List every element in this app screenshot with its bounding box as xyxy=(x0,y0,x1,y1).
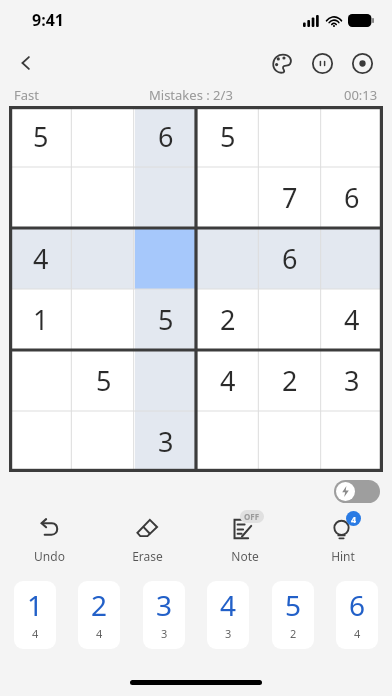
staticText: 5 xyxy=(285,586,302,624)
staticText: 3 xyxy=(161,626,168,641)
button[interactable] xyxy=(9,167,72,228)
button[interactable]: 6 xyxy=(336,581,378,649)
staticText: Note xyxy=(231,548,259,564)
staticText: Fast xyxy=(14,86,39,104)
button[interactable]: 5 xyxy=(197,106,259,167)
button[interactable]: 4 xyxy=(9,228,72,289)
staticText: 4 xyxy=(344,301,360,338)
staticText: 2 xyxy=(282,362,298,399)
staticText: Erase xyxy=(132,548,163,564)
button[interactable]: 2 xyxy=(78,581,120,649)
button[interactable]: 4 xyxy=(294,509,392,567)
staticText: 6 xyxy=(344,179,360,216)
button[interactable]: Auto candidate toggle xyxy=(334,480,380,503)
staticText: 4 xyxy=(354,626,361,641)
button[interactable]: 2 xyxy=(197,289,259,350)
staticText: 5 xyxy=(96,362,112,399)
button[interactable]: Undo xyxy=(0,509,98,567)
button[interactable]: 5 xyxy=(72,350,135,411)
button[interactable] xyxy=(321,106,383,167)
button[interactable] xyxy=(321,411,383,472)
button[interactable] xyxy=(321,228,383,289)
staticText: 4 xyxy=(351,513,357,525)
staticText: 4 xyxy=(220,362,236,399)
button[interactable]: OFF xyxy=(196,509,294,567)
staticText: 4 xyxy=(220,586,237,624)
staticText: 5 xyxy=(33,118,49,155)
staticText: 2 xyxy=(290,626,297,641)
button[interactable]: 4 xyxy=(321,289,383,350)
staticText: 3 xyxy=(158,423,174,460)
staticText: 3 xyxy=(344,362,360,399)
button[interactable]: 3 xyxy=(143,581,185,649)
staticText: 4 xyxy=(96,626,103,641)
button[interactable] xyxy=(72,167,135,228)
button[interactable] xyxy=(135,228,197,289)
staticText: 9:41 xyxy=(32,9,64,31)
button[interactable]: 6 xyxy=(135,106,197,167)
button[interactable]: 3 xyxy=(135,411,197,472)
button[interactable]: 5 xyxy=(9,106,72,167)
button[interactable]: Back xyxy=(6,43,46,83)
button[interactable] xyxy=(197,228,259,289)
button[interactable] xyxy=(72,289,135,350)
button[interactable] xyxy=(197,167,259,228)
button[interactable] xyxy=(135,350,197,411)
button[interactable] xyxy=(9,350,72,411)
button[interactable] xyxy=(259,289,321,350)
button[interactable]: 5 xyxy=(272,581,314,649)
button[interactable]: 6 xyxy=(259,228,321,289)
button[interactable]: Theme xyxy=(262,43,302,83)
button[interactable] xyxy=(197,411,259,472)
staticText: 4 xyxy=(33,240,49,277)
staticText: 2 xyxy=(220,301,236,338)
button[interactable] xyxy=(135,167,197,228)
staticText: 2 xyxy=(91,586,108,624)
button[interactable]: 5 xyxy=(135,289,197,350)
staticText: 6 xyxy=(349,586,366,624)
staticText: 5 xyxy=(158,301,174,338)
staticText: 7 xyxy=(282,179,298,216)
staticText: Undo xyxy=(34,548,65,564)
button[interactable]: 4 xyxy=(197,350,259,411)
staticText: 3 xyxy=(225,626,232,641)
button[interactable] xyxy=(259,411,321,472)
button[interactable] xyxy=(259,106,321,167)
button[interactable]: 3 xyxy=(321,350,383,411)
staticText: Hint xyxy=(331,548,355,564)
button[interactable]: Erase xyxy=(98,509,196,567)
button[interactable] xyxy=(72,411,135,472)
staticText: 1 xyxy=(27,586,44,624)
button[interactable] xyxy=(72,106,135,167)
staticText: 6 xyxy=(158,118,174,155)
staticText: OFF xyxy=(244,511,260,522)
staticText: 4 xyxy=(32,626,39,641)
staticText: Mistakes : 2/3 xyxy=(149,86,233,104)
button[interactable]: 2 xyxy=(259,350,321,411)
button[interactable]: Settings xyxy=(342,43,382,83)
staticText: 5 xyxy=(220,118,236,155)
button[interactable]: 4 xyxy=(207,581,249,649)
staticText: 6 xyxy=(282,240,298,277)
button[interactable] xyxy=(72,228,135,289)
staticText: 1 xyxy=(33,301,49,338)
button[interactable] xyxy=(9,411,72,472)
button[interactable]: 7 xyxy=(259,167,321,228)
button[interactable]: 1 xyxy=(14,581,56,649)
staticText: 00:13 xyxy=(344,86,378,104)
staticText: 3 xyxy=(156,586,173,624)
button[interactable]: 1 xyxy=(9,289,72,350)
button[interactable]: Pause xyxy=(302,43,342,83)
button[interactable]: 6 xyxy=(321,167,383,228)
